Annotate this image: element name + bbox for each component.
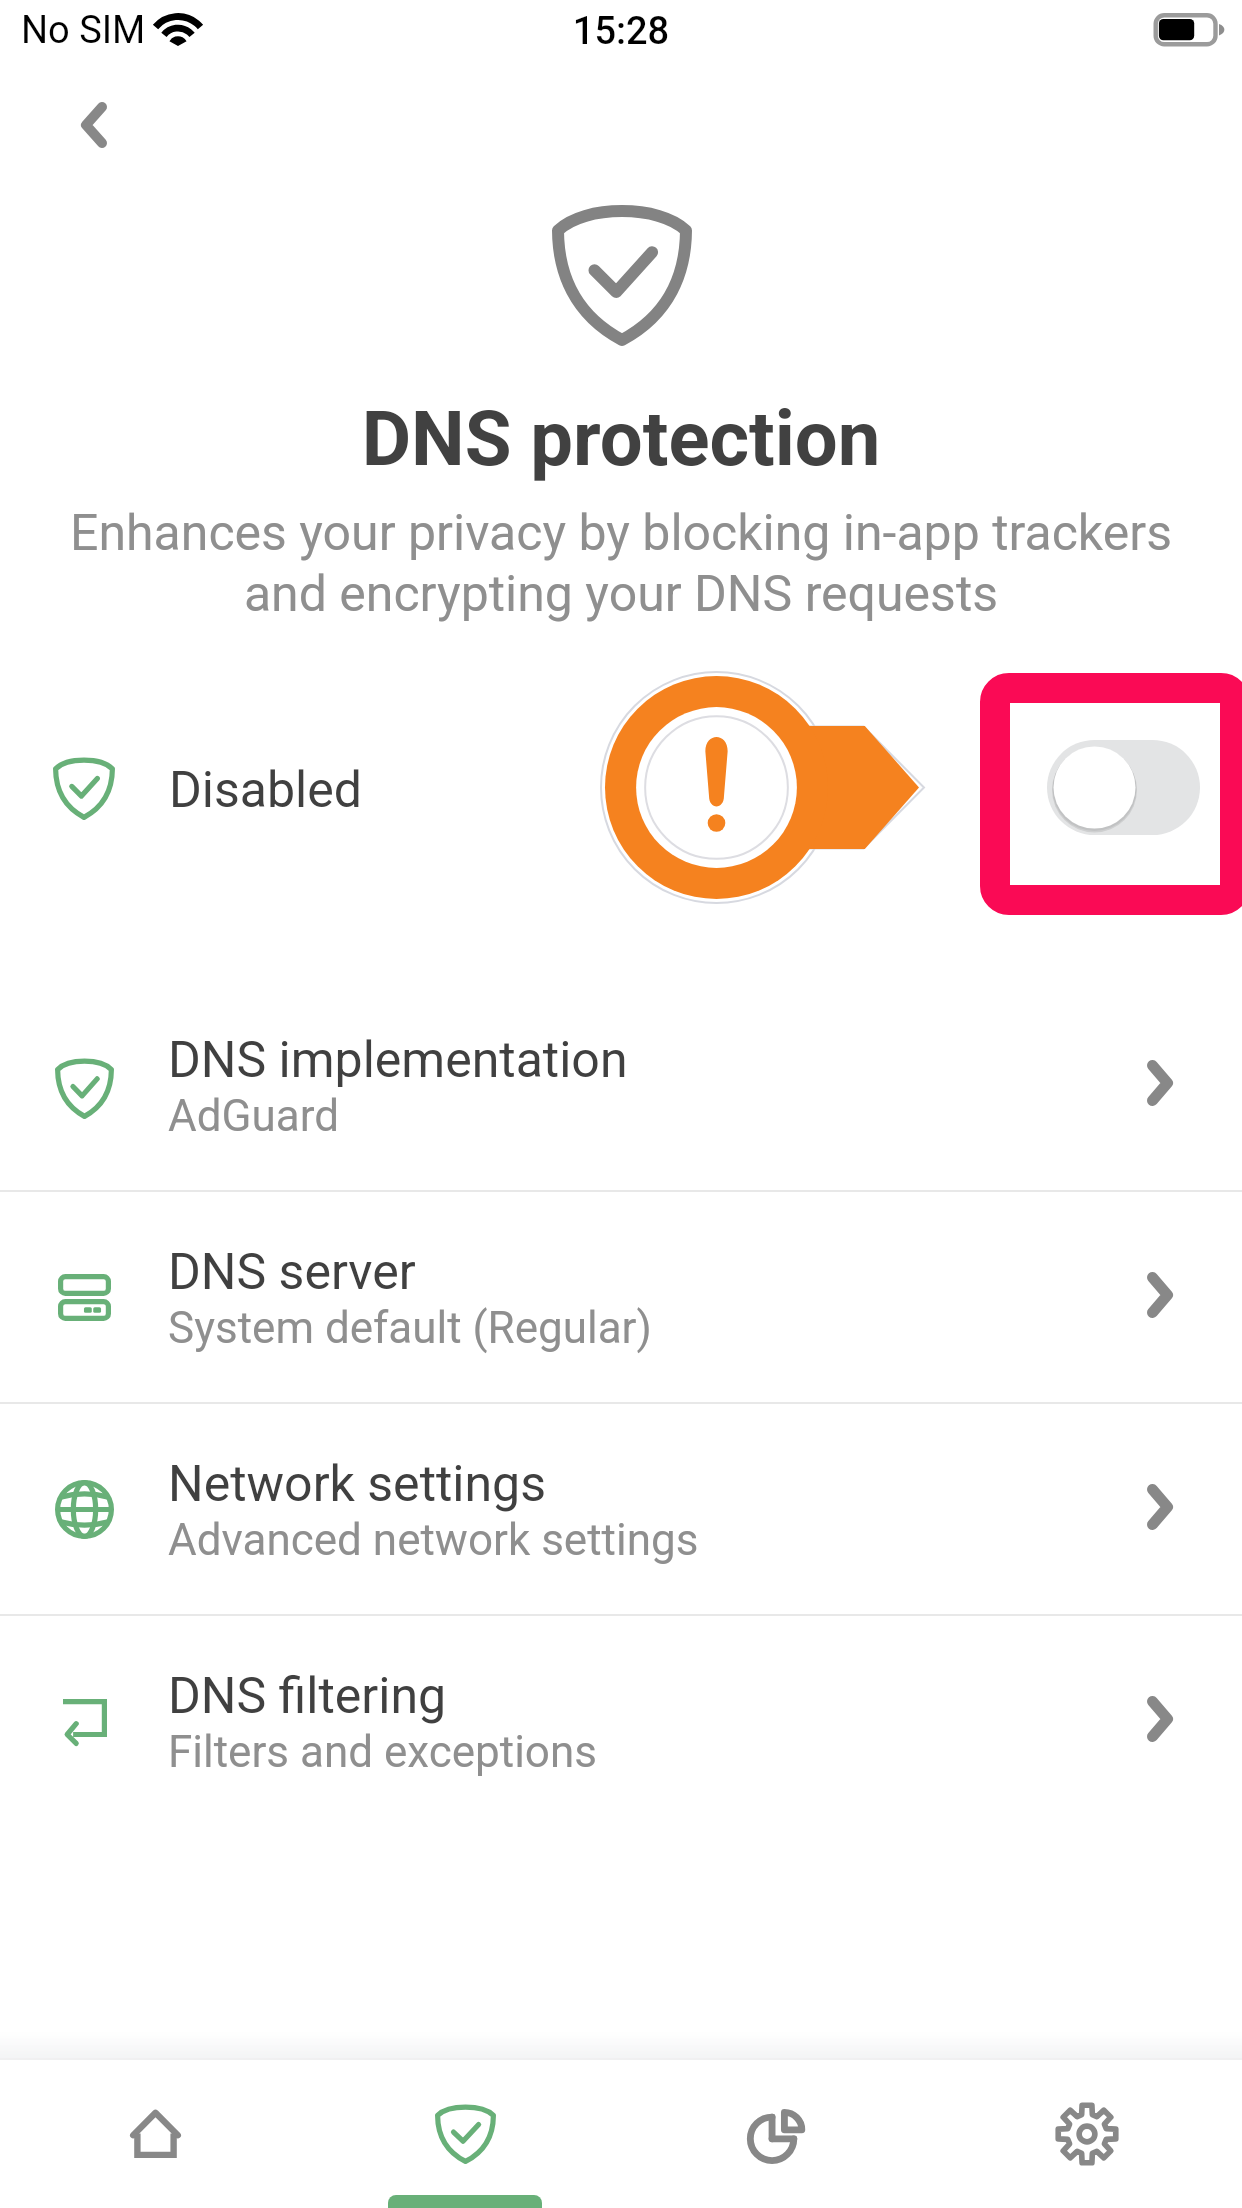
staticText: Advanced network settings [168, 1514, 699, 1566]
button[interactable]: Home [0, 2060, 310, 2208]
staticText: Filters and exceptions [168, 1726, 597, 1778]
button[interactable]: DNS protection [310, 2060, 620, 2208]
staticText: 15:28 [0, 9, 1242, 54]
button[interactable]: Disabled [0, 662, 1242, 914]
staticText: DNS filtering [168, 1667, 447, 1726]
staticText: No SIM [21, 8, 146, 53]
staticText: AdGuard [168, 1090, 339, 1142]
button[interactable]: Statistics [620, 2060, 931, 2208]
button[interactable]: DNS filtering [0, 1626, 1242, 1826]
staticText: System default (Regular) [168, 1302, 652, 1354]
button[interactable]: Network settings [0, 1414, 1242, 1614]
staticText: Network settings [168, 1455, 547, 1514]
button[interactable]: Back [42, 73, 146, 177]
staticText: DNS implementation [168, 1031, 628, 1090]
staticText: DNS server [168, 1243, 416, 1302]
button[interactable]: Settings [931, 2060, 1242, 2208]
button[interactable]: DNS implementation [0, 990, 1242, 1190]
staticText: Disabled [169, 761, 362, 820]
staticText: Enhances your privacy by blocking in-app… [0, 504, 1242, 623]
button[interactable]: DNS server [0, 1202, 1242, 1402]
staticText: DNS protection [0, 394, 1242, 483]
